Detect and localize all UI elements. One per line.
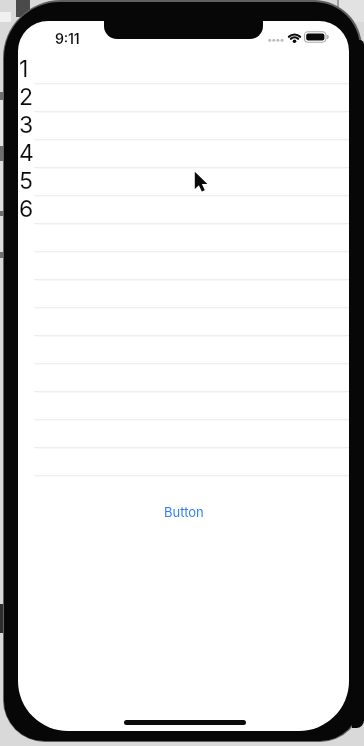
staticText: 5 [19, 167, 33, 195]
staticText: 2 [19, 83, 34, 111]
button[interactable]: 3 [19, 111, 349, 139]
staticText: 1 [19, 55, 29, 83]
staticText: 9:11 [55, 30, 80, 47]
button[interactable]: 6 [19, 195, 349, 223]
button[interactable]: Button [156, 500, 212, 524]
button[interactable]: 5 [19, 167, 349, 195]
button[interactable]: 4 [19, 139, 349, 167]
button[interactable]: 1 [19, 55, 349, 83]
staticText: 4 [19, 139, 34, 167]
staticText: Button [164, 504, 204, 520]
button[interactable]: 2 [19, 83, 349, 111]
staticText: 3 [19, 111, 34, 139]
staticText: 6 [19, 195, 34, 223]
